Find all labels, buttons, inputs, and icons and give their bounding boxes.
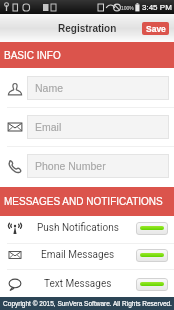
staticText: Copyright © 2015, SunVera Software. All …	[3, 300, 172, 307]
button[interactable]: Toggle Push Notifications	[136, 222, 168, 235]
button[interactable]: Save	[142, 22, 169, 35]
button[interactable]: Text Messages	[0, 271, 174, 297]
button[interactable]: Toggle Email Messages	[136, 249, 168, 262]
button[interactable]: Phone Number	[0, 145, 174, 186]
staticText: Push Notifications	[37, 222, 119, 234]
staticText: 100%	[121, 5, 134, 11]
staticText: Save	[146, 24, 166, 33]
staticText: Name	[35, 82, 64, 94]
button[interactable]: Toggle Text Messages	[136, 278, 168, 291]
staticText: 3:45 PM	[142, 3, 172, 12]
staticText: Phone Number	[35, 160, 106, 172]
button[interactable]: Email Messages	[0, 242, 174, 268]
button[interactable]: Push Notifications	[0, 215, 174, 241]
button[interactable]: Name	[0, 68, 174, 107]
button[interactable]: Email	[0, 107, 174, 146]
staticText: BASIC INFO	[4, 50, 61, 61]
staticText: MESSAGES AND NOTIFICATIONS	[4, 196, 163, 207]
staticText: Registration	[58, 23, 117, 34]
staticText: Email	[35, 121, 62, 133]
staticText: Email Messages	[41, 249, 115, 261]
staticText: Text Messages	[44, 278, 112, 290]
